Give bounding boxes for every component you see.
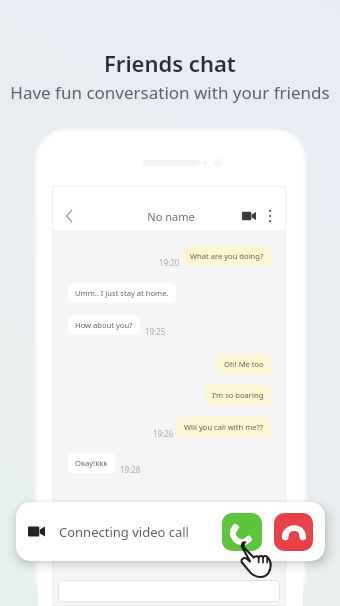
- staticText: I'm so boaring: [212, 390, 264, 400]
- staticText: Friends chat: [104, 48, 236, 78]
- button[interactable]: What are you doing?: [183, 246, 271, 266]
- button[interactable]: Umm.. I just stay at home.: [68, 283, 176, 303]
- button[interactable]: Video call: [236, 203, 262, 229]
- staticText: Oh! Me too: [224, 359, 264, 369]
- button[interactable]: Oh! Me too: [217, 354, 271, 374]
- staticText: No name: [147, 209, 195, 224]
- staticText: Okay!kkk: [75, 458, 108, 468]
- staticText: Connecting video call: [59, 523, 189, 541]
- staticText: 19:26: [153, 428, 174, 439]
- button[interactable]: Decline call: [274, 513, 313, 551]
- staticText: Have fun conversation with your friends: [10, 81, 330, 104]
- staticText: Umm.. I just stay at home.: [75, 288, 169, 298]
- staticText: 19:25: [145, 326, 166, 337]
- staticText: 19:20: [159, 257, 180, 268]
- button[interactable]: Will you call with me??: [177, 417, 271, 437]
- button[interactable]: Back: [55, 202, 83, 230]
- button[interactable]: Message input: [58, 580, 280, 602]
- button[interactable]: Okay!kkk: [68, 453, 115, 473]
- button[interactable]: How about you?: [68, 315, 140, 335]
- staticText: Will you call with me??: [184, 422, 264, 432]
- staticText: How about you?: [75, 320, 133, 330]
- button[interactable]: Accept call: [222, 513, 262, 551]
- button[interactable]: I'm so boaring: [205, 385, 271, 405]
- staticText: 19:28: [120, 464, 141, 475]
- button[interactable]: More options: [257, 203, 283, 229]
- staticText: What are you doing?: [190, 251, 264, 261]
